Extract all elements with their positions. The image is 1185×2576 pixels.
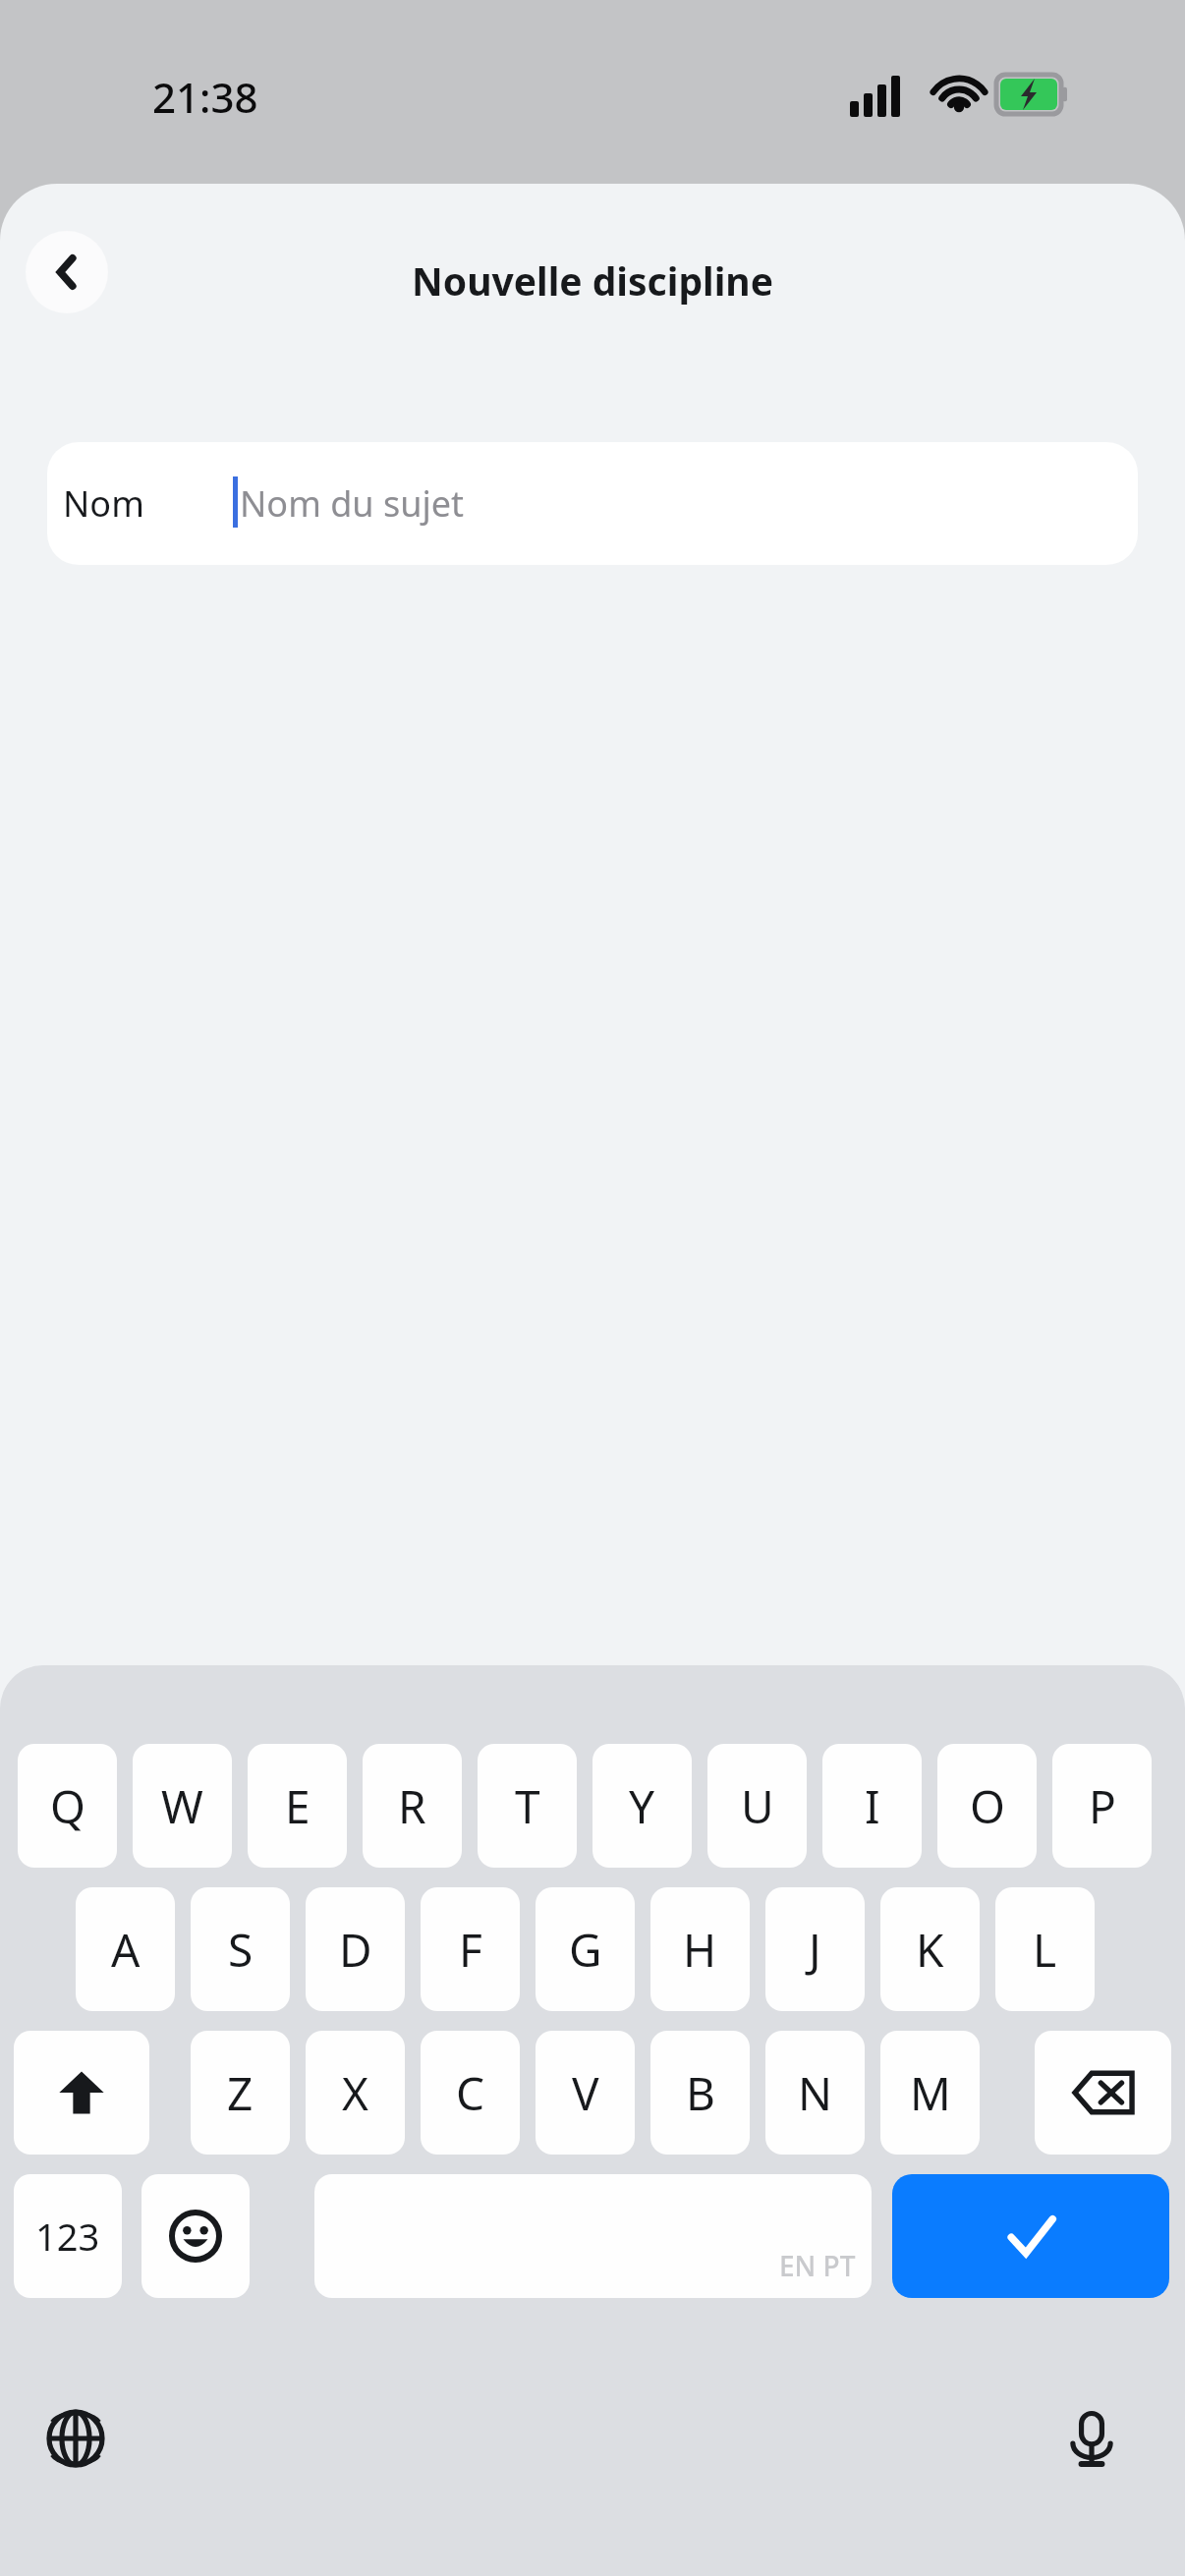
button[interactable]: Y — [592, 1744, 692, 1868]
staticText: D — [339, 1919, 372, 1981]
button[interactable]: L — [995, 1887, 1095, 2011]
staticText: N — [798, 2062, 832, 2124]
staticText: I — [865, 1775, 880, 1837]
button[interactable]: Nom — [47, 442, 1138, 565]
button[interactable]: E — [248, 1744, 347, 1868]
button[interactable]: K — [880, 1887, 980, 2011]
button[interactable]: Emoji — [141, 2174, 250, 2298]
button[interactable]: Space — [314, 2174, 872, 2298]
staticText: X — [342, 2062, 368, 2124]
staticText: P — [1089, 1775, 1116, 1837]
staticText: Y — [629, 1775, 655, 1837]
button[interactable]: F — [421, 1887, 520, 2011]
button[interactable]: R — [363, 1744, 462, 1868]
button[interactable]: C — [421, 2031, 520, 2155]
button[interactable]: Shift — [14, 2031, 149, 2155]
staticText: Nom du sujet — [240, 479, 464, 528]
staticText: O — [970, 1775, 1005, 1837]
staticText: U — [741, 1775, 774, 1837]
button[interactable]: A — [76, 1887, 175, 2011]
staticText: EN PT — [779, 2247, 856, 2284]
staticText: B — [686, 2062, 715, 2124]
staticText: V — [572, 2062, 599, 2124]
button[interactable]: Back — [26, 231, 108, 313]
staticText: G — [569, 1919, 602, 1981]
button[interactable]: O — [937, 1744, 1037, 1868]
staticText: Nouvelle discipline — [0, 254, 1185, 307]
staticText: T — [515, 1775, 540, 1837]
button[interactable]: Enter — [892, 2174, 1169, 2298]
staticText: C — [456, 2062, 485, 2124]
button[interactable]: N — [765, 2031, 865, 2155]
staticText: Q — [50, 1775, 85, 1837]
button[interactable]: Change language — [29, 2392, 122, 2485]
button[interactable]: Backspace — [1035, 2031, 1171, 2155]
staticText: M — [910, 2062, 951, 2124]
button[interactable]: J — [765, 1887, 865, 2011]
button[interactable]: W — [133, 1744, 232, 1868]
button[interactable]: Z — [191, 2031, 290, 2155]
staticText: J — [809, 1919, 821, 1981]
button[interactable]: D — [306, 1887, 405, 2011]
staticText: H — [683, 1919, 717, 1981]
button[interactable]: M — [880, 2031, 980, 2155]
button[interactable]: B — [650, 2031, 750, 2155]
button[interactable]: S — [191, 1887, 290, 2011]
staticText: F — [459, 1919, 482, 1981]
staticText: S — [228, 1919, 254, 1981]
staticText: Nom — [63, 479, 144, 528]
staticText: Z — [227, 2062, 254, 2124]
button[interactable]: T — [478, 1744, 577, 1868]
staticText: 21:38 — [152, 69, 258, 125]
staticText: E — [285, 1775, 310, 1837]
button[interactable]: P — [1052, 1744, 1152, 1868]
staticText: R — [398, 1775, 426, 1837]
button[interactable]: Voice input — [1045, 2392, 1138, 2485]
button[interactable]: Q — [18, 1744, 117, 1868]
staticText: K — [916, 1919, 944, 1981]
staticText: A — [111, 1919, 141, 1981]
button[interactable]: 123 — [14, 2174, 122, 2298]
staticText: 123 — [35, 2211, 100, 2262]
button[interactable]: V — [536, 2031, 635, 2155]
button[interactable]: I — [822, 1744, 922, 1868]
button[interactable]: U — [707, 1744, 807, 1868]
staticText: L — [1033, 1919, 1057, 1981]
button[interactable]: G — [536, 1887, 635, 2011]
staticText: W — [161, 1775, 203, 1837]
button[interactable]: X — [306, 2031, 405, 2155]
button[interactable]: H — [650, 1887, 750, 2011]
